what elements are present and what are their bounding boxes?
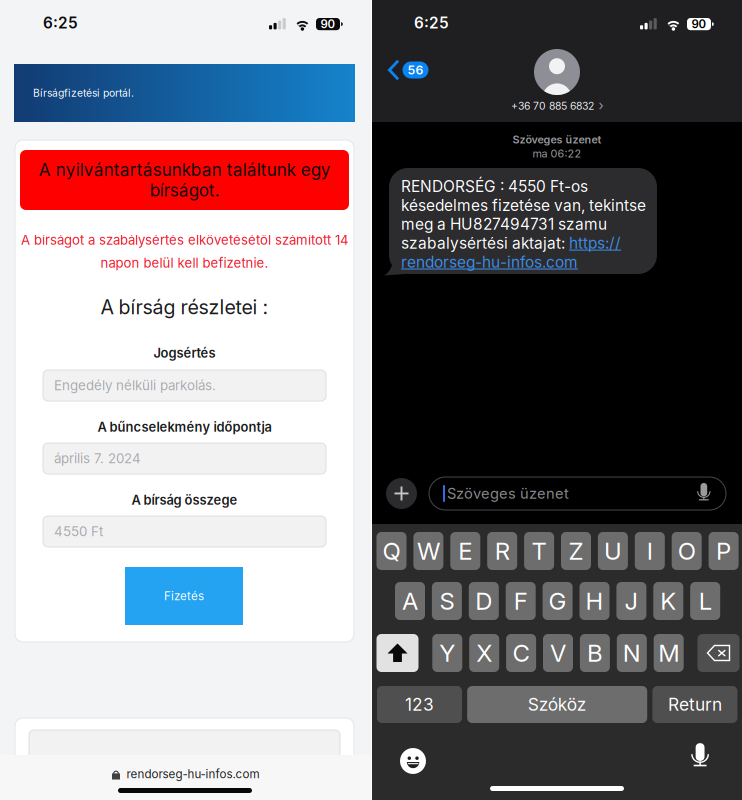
button[interactable]: B (580, 634, 610, 672)
button[interactable]: L (690, 582, 720, 620)
button[interactable]: Emoji (400, 748, 426, 774)
button[interactable]: O (672, 532, 702, 570)
staticText: 4550 Ft (54, 523, 103, 539)
staticText: K (660, 586, 676, 615)
staticText: A bírság összege (131, 492, 237, 508)
button[interactable]: +36 70 885 6832 (511, 100, 603, 112)
staticText: 6:25 (414, 14, 449, 32)
staticText: rendorseg-hu-infos.com (401, 253, 578, 271)
staticText: S (439, 586, 454, 615)
button[interactable]: V (543, 634, 573, 672)
staticText: szabalysértési aktajat: (401, 234, 569, 252)
staticText: Szöveges üzenet (447, 485, 569, 502)
staticText: 56 (407, 63, 423, 77)
staticText: L (699, 586, 712, 615)
staticText: G (549, 586, 567, 615)
staticText: rendorseg-hu-infos.com (126, 767, 259, 781)
staticText: április 7. 2024 (54, 450, 141, 466)
staticText: T (532, 536, 547, 565)
staticText: P (716, 536, 731, 565)
button[interactable]: 123 (377, 686, 462, 723)
button[interactable]: P (709, 532, 739, 570)
staticText: W (417, 536, 440, 565)
staticText: napon belül kell befizetnie. (100, 255, 268, 271)
button[interactable]: C (506, 634, 536, 672)
staticText: Jogsértés (153, 345, 215, 361)
button[interactable]: J (616, 582, 646, 620)
staticText: O (678, 536, 696, 565)
button[interactable]: D (469, 582, 499, 620)
staticText: A (402, 586, 418, 615)
button[interactable]: Szöveges üzenet (429, 477, 726, 510)
staticText: V (550, 638, 566, 667)
staticText: H (585, 586, 603, 615)
staticText: késedelmes fizetése van, tekintse (401, 196, 646, 215)
button[interactable]: Add attachment (386, 478, 417, 509)
button[interactable]: Y (432, 634, 462, 672)
staticText: meg a HU827494731 szamu (401, 215, 607, 233)
button[interactable]: I (635, 532, 665, 570)
staticText: M (658, 638, 679, 667)
button[interactable]: Shift (376, 634, 418, 672)
button[interactable]: E (450, 532, 480, 570)
staticText: R (495, 536, 510, 565)
button[interactable]: Q (376, 532, 406, 570)
staticText: A bűncselekmény időpontja (97, 419, 271, 435)
button[interactable]: 56 (388, 59, 428, 81)
button[interactable]: Fizetés (125, 567, 243, 625)
staticText: Q (382, 536, 400, 565)
button[interactable]: Szóköz (467, 686, 647, 723)
staticText: C (513, 638, 530, 667)
staticText: Szóköz (528, 694, 587, 715)
staticText: 123 (405, 694, 434, 715)
button[interactable]: Delete (697, 634, 739, 672)
staticText: 90 (320, 17, 335, 31)
button[interactable]: U (598, 532, 628, 570)
button[interactable]: K (653, 582, 683, 620)
staticText: B (587, 638, 603, 667)
button[interactable]: G (543, 582, 573, 620)
staticText: Z (568, 536, 583, 565)
staticText: Engedély nélküli parkolás. (54, 377, 216, 393)
button[interactable]: H (579, 582, 609, 620)
button[interactable]: Return (652, 686, 737, 723)
staticText: X (476, 638, 492, 667)
button[interactable]: Dictation (691, 743, 709, 771)
staticText: U (604, 536, 622, 565)
staticText: RENDORSÉG : 4550 Ft-os (401, 177, 588, 196)
staticText: 6:25 (43, 14, 78, 32)
staticText: Bírságfizetési portál. (33, 87, 134, 99)
staticText: F (514, 586, 528, 615)
staticText: Fizetés (164, 589, 204, 603)
button[interactable]: X (469, 634, 499, 672)
button[interactable]: A (395, 582, 425, 620)
staticText: J (624, 586, 638, 615)
button[interactable]: W (413, 532, 443, 570)
staticText: 90 (691, 17, 706, 31)
staticText: E (458, 536, 472, 565)
staticText: A bírság részletei : (100, 295, 268, 319)
staticText: https:// (569, 234, 621, 252)
staticText: Y (439, 638, 455, 667)
staticText: +36 70 885 6832 (511, 100, 594, 112)
button[interactable]: T (524, 532, 554, 570)
staticText: A nyilvántartásunkban találtunk egy bírs… (38, 159, 330, 201)
staticText: I (647, 536, 653, 565)
button[interactable]: M (654, 634, 684, 672)
staticText: Return (668, 694, 722, 715)
button[interactable]: Z (561, 532, 591, 570)
button[interactable]: N (617, 634, 647, 672)
staticText: ma 06:22 (532, 147, 581, 160)
button[interactable]: F (506, 582, 536, 620)
button[interactable]: rendorseg-hu-infos.com (0, 761, 371, 787)
button[interactable]: R (487, 532, 517, 570)
button[interactable]: S (432, 582, 462, 620)
staticText: A bírságot a szabálysértés elkövetésétől… (21, 232, 348, 248)
staticText: N (623, 638, 641, 667)
staticText: D (475, 586, 492, 615)
staticText: Szöveges üzenet (512, 133, 601, 146)
